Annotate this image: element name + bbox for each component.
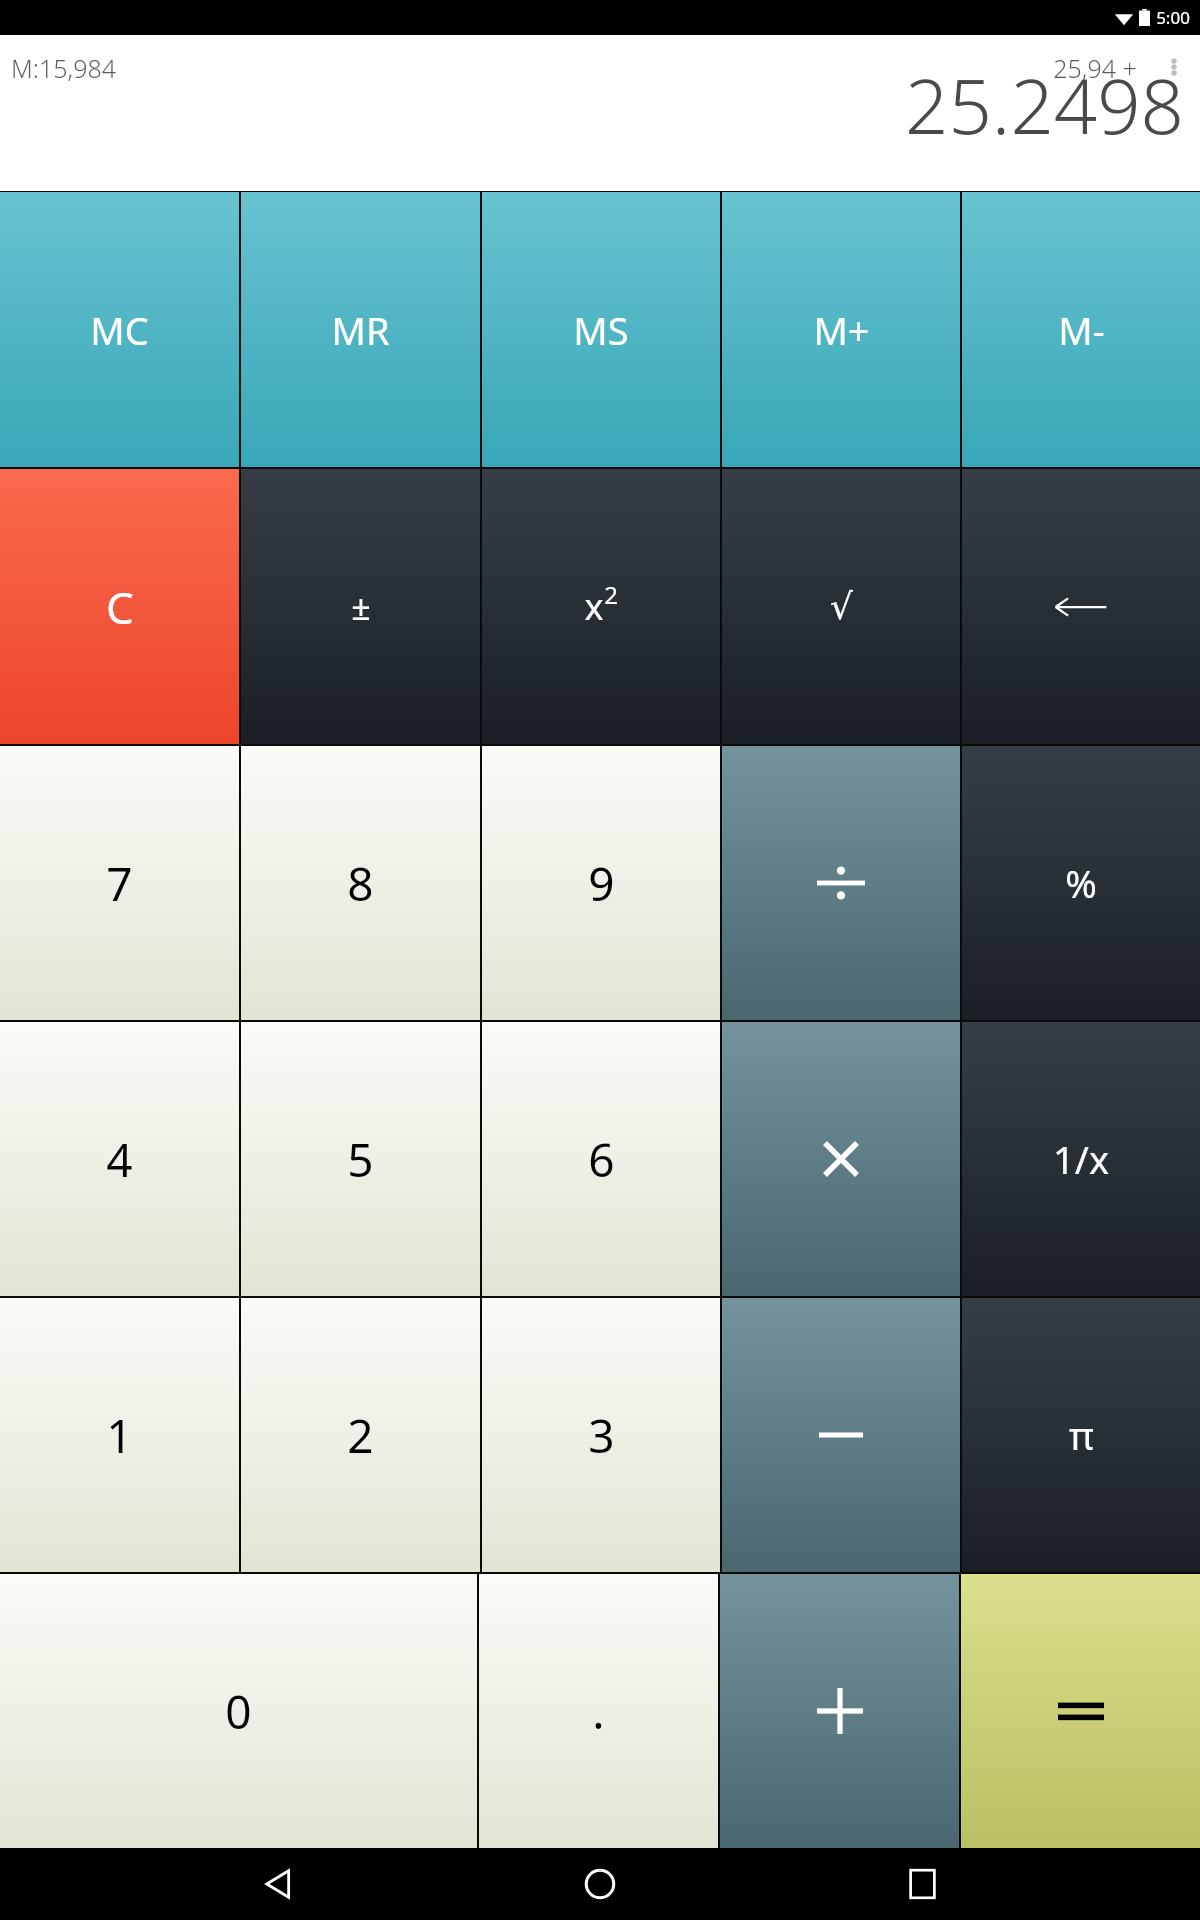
button[interactable]: 25,94 + (1053, 51, 1137, 85)
staticText: C (106, 577, 134, 637)
staticText: ± (351, 584, 371, 630)
button[interactable]: MR (241, 192, 480, 467)
staticText: x (584, 582, 604, 631)
button[interactable]: 8 (241, 746, 480, 1020)
button[interactable]: More options (1156, 45, 1192, 89)
staticText: 7 (106, 852, 133, 915)
button[interactable]: 2 (241, 1298, 480, 1572)
button[interactable]: 6 (482, 1022, 720, 1296)
button[interactable]: Equals (961, 1574, 1200, 1848)
staticText: 25,94 + (1053, 51, 1137, 85)
button[interactable]: Minus (722, 1298, 960, 1572)
button[interactable]: MC (0, 192, 239, 467)
staticText: 1 (106, 1404, 133, 1467)
button[interactable]: x (482, 469, 720, 744)
button[interactable]: Divide (722, 746, 960, 1020)
button[interactable]: Home (556, 1848, 644, 1920)
staticText: 25.2498 (905, 53, 1184, 157)
staticText: 9 (588, 852, 615, 915)
button[interactable]: M+ (722, 192, 960, 467)
staticText: √ (830, 586, 853, 628)
staticText: 6 (588, 1128, 615, 1191)
button[interactable]: Backspace (962, 469, 1200, 744)
button[interactable]: π (962, 1298, 1200, 1572)
button[interactable]: 4 (0, 1022, 239, 1296)
button[interactable]: Recent apps (878, 1848, 966, 1920)
button[interactable]: 3 (482, 1298, 720, 1572)
staticText: 8 (347, 852, 374, 915)
staticText: M:15,984 (11, 51, 116, 85)
button[interactable]: Multiply (722, 1022, 960, 1296)
staticText: . (592, 1680, 605, 1743)
button[interactable]: Back (234, 1848, 322, 1920)
button[interactable]: √ (722, 469, 960, 744)
button[interactable]: ± (241, 469, 480, 744)
staticText: M- (1058, 304, 1105, 356)
button[interactable]: 5 (241, 1022, 480, 1296)
staticText: % (1065, 857, 1097, 909)
button[interactable]: 9 (482, 746, 720, 1020)
staticText: 1/x (1053, 1133, 1109, 1185)
staticText: MR (331, 304, 390, 356)
button[interactable]: 7 (0, 746, 239, 1020)
button[interactable]: C (0, 469, 239, 744)
button[interactable]: MS (482, 192, 720, 467)
button[interactable]: Plus (720, 1574, 959, 1848)
staticText: 4 (106, 1128, 133, 1191)
staticText: MS (573, 304, 629, 356)
staticText: 5:00 (1156, 6, 1190, 29)
button[interactable]: . (479, 1574, 718, 1848)
staticText: 2 (604, 578, 618, 611)
button[interactable]: % (962, 746, 1200, 1020)
staticText: 0 (225, 1680, 252, 1743)
button[interactable]: 1/x (962, 1022, 1200, 1296)
button[interactable]: 1 (0, 1298, 239, 1572)
staticText: 2 (347, 1404, 374, 1467)
staticText: 5 (347, 1128, 374, 1191)
staticText: 3 (588, 1404, 615, 1467)
button[interactable]: M:15,984 (11, 51, 116, 85)
staticText: M+ (813, 304, 870, 356)
button[interactable]: 0 (0, 1574, 477, 1848)
staticText: MC (90, 304, 149, 356)
button[interactable]: M- (962, 192, 1200, 467)
staticText: π (1069, 1409, 1094, 1461)
